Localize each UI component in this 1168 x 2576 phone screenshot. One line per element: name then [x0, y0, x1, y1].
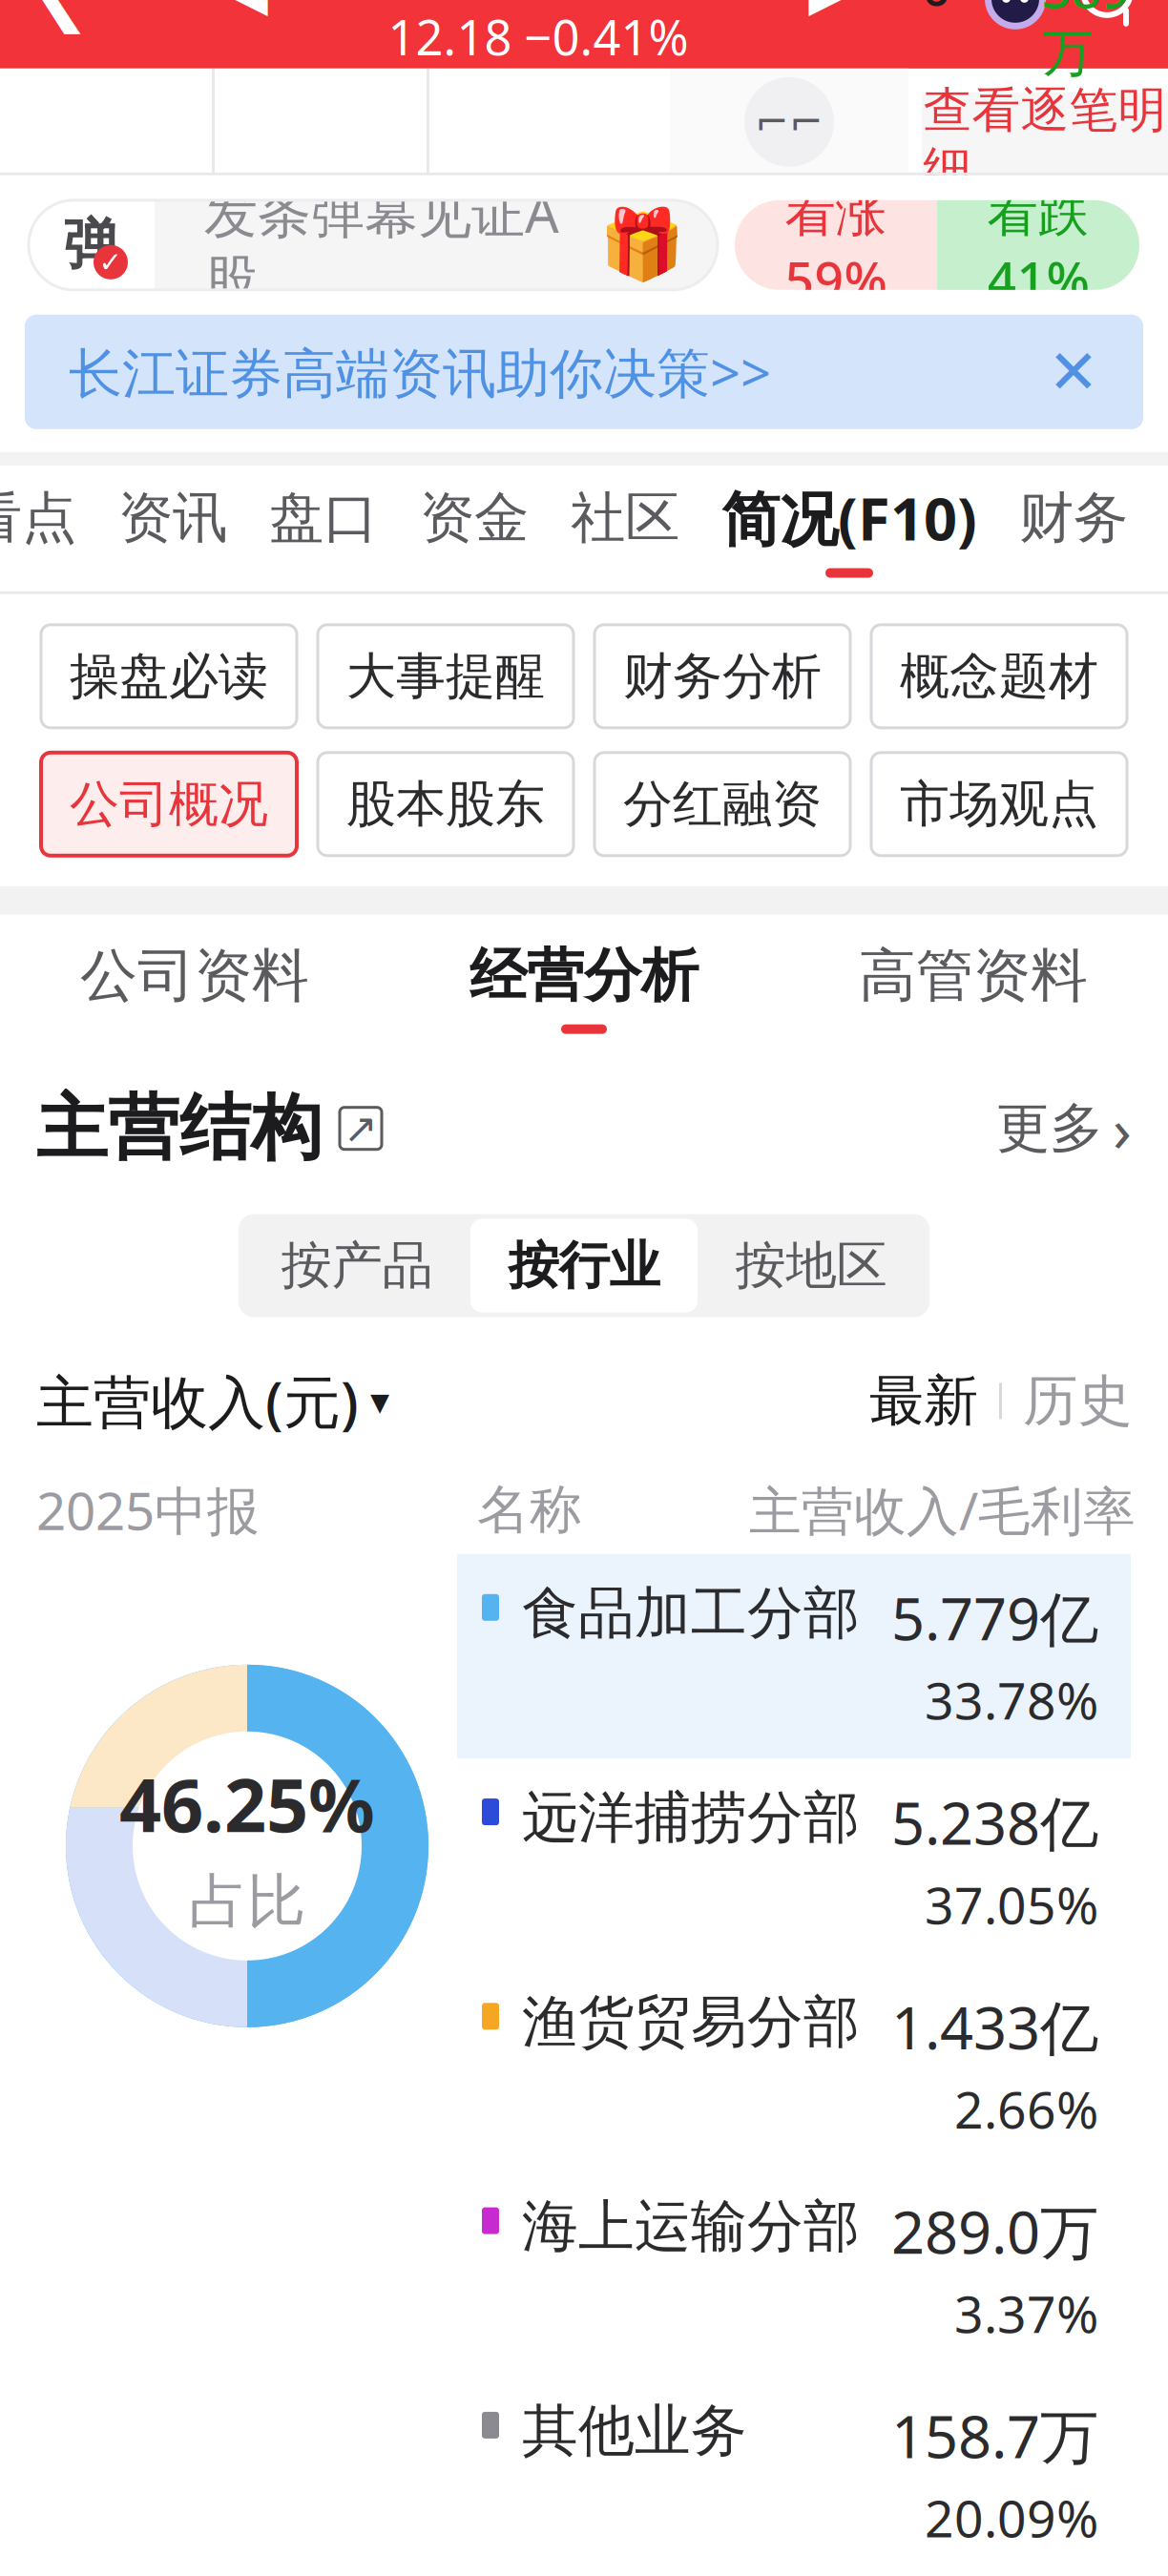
- button[interactable]: Search: [1061, 0, 1153, 44]
- button[interactable]: 公司概况: [41, 753, 297, 856]
- staticText: 2025中报: [36, 1475, 260, 1544]
- button[interactable]: 看跌 41%: [937, 200, 1139, 290]
- button[interactable]: Open in new page: [323, 1107, 382, 1149]
- button[interactable]: 按产品: [243, 1219, 470, 1312]
- button[interactable]: 概念题材: [871, 625, 1127, 728]
- staticText: 操盘必读: [70, 646, 268, 707]
- staticText: ▶: [808, 0, 849, 22]
- staticText: 1.433亿: [891, 1988, 1098, 2065]
- staticText: ↗: [344, 1105, 378, 1151]
- button[interactable]: 分红融资: [594, 753, 850, 856]
- staticText: 289.0万: [891, 2192, 1098, 2270]
- button[interactable]: 远洋捕捞分部: [457, 1758, 1131, 1963]
- staticText: 看涨 59%: [785, 177, 887, 313]
- button[interactable]: 渔货贸易分部: [457, 1963, 1131, 2167]
- button[interactable]: 社区: [550, 465, 700, 591]
- button[interactable]: 财务分析: [594, 625, 850, 728]
- staticText: 37.05%: [925, 1870, 1098, 1938]
- button[interactable]: 食品加工分部: [457, 1554, 1131, 1758]
- button[interactable]: 资讯: [97, 465, 248, 591]
- staticText: 财务: [1019, 484, 1128, 551]
- button[interactable]: 经营分析: [389, 915, 779, 1060]
- staticText: 其他业务: [522, 2397, 747, 2465]
- staticText: 分红融资: [623, 774, 822, 835]
- staticText: 主营结构: [36, 1085, 323, 1172]
- staticText: ›: [1113, 1088, 1132, 1169]
- button[interactable]: AI assistant: [970, 0, 1061, 44]
- staticText: 占比: [189, 1866, 305, 1938]
- button[interactable]: 简况(F10): [700, 465, 998, 591]
- staticText: 海上运输分部: [522, 2192, 860, 2261]
- staticText: ✓: [99, 246, 123, 278]
- button[interactable]: 长江证券高端资讯助你决策>>: [25, 315, 1143, 429]
- staticText: 渔货贸易分部: [522, 1988, 860, 2057]
- button[interactable]: 股本股东: [318, 753, 574, 856]
- staticText: 按产品: [281, 1234, 433, 1297]
- staticText: 按地区: [735, 1234, 887, 1297]
- button[interactable]: 大事提醒: [318, 625, 574, 728]
- staticText: 财务分析: [623, 646, 822, 707]
- button[interactable]: 市场观点: [871, 753, 1127, 856]
- button[interactable]: 资金: [399, 465, 550, 591]
- staticText: 20.09%: [925, 2484, 1098, 2551]
- button[interactable]: 高管资料: [779, 915, 1168, 1060]
- staticText: 最新: [869, 1367, 978, 1435]
- button[interactable]: Previous stock: [210, 0, 285, 44]
- button[interactable]: 查看逐笔明细: [922, 92, 1168, 188]
- button[interactable]: 公司资料: [0, 915, 389, 1060]
- staticText: 长江证券高端资讯助你决策>>: [69, 336, 771, 407]
- button[interactable]: 按地区: [698, 1219, 925, 1312]
- staticText: 5.238亿: [891, 1783, 1098, 1861]
- staticText: 社区: [571, 484, 679, 551]
- staticText: 158.7万: [891, 2397, 1098, 2474]
- button[interactable]: 海上运输分部: [457, 2167, 1131, 2372]
- button[interactable]: 操盘必读: [41, 625, 297, 728]
- staticText: 名称: [477, 1478, 582, 1542]
- staticText: 弹: [63, 211, 120, 279]
- staticText: 看点: [0, 484, 76, 551]
- staticText: 大事提醒: [346, 646, 545, 707]
- button[interactable]: 按行业: [470, 1219, 698, 1312]
- staticText: ⌐⌐: [755, 99, 824, 145]
- staticText: 12.18 −0.41%: [388, 5, 688, 69]
- staticText: 概念题材: [900, 646, 1098, 707]
- staticText: ❮: [30, 0, 92, 33]
- button[interactable]: 财务: [998, 465, 1149, 591]
- button[interactable]: 其他业务: [457, 2372, 1131, 2576]
- staticText: 查看逐笔明细: [923, 81, 1167, 199]
- button[interactable]: 更多: [996, 1088, 1132, 1169]
- button[interactable]: Back: [15, 0, 107, 44]
- staticText: 主营收入/毛利率: [749, 1475, 1136, 1544]
- staticText: 2.66%: [954, 2075, 1098, 2142]
- staticText: 股本股东: [346, 774, 545, 835]
- button[interactable]: 看点: [0, 465, 97, 591]
- staticText: 15:00: [922, 0, 1025, 20]
- staticText: 🎁: [599, 206, 685, 284]
- button[interactable]: 历史: [1023, 1367, 1132, 1435]
- button[interactable]: 盘口: [248, 465, 399, 591]
- staticText: 资金: [420, 484, 529, 551]
- staticText: ◀: [227, 0, 268, 22]
- staticText: 主营收入(元): [36, 1363, 359, 1439]
- staticText: 3.37%: [954, 2279, 1098, 2347]
- staticText: 公司资料: [80, 941, 309, 1011]
- staticText: 更多: [996, 1096, 1103, 1161]
- staticText: ▾: [370, 1379, 389, 1423]
- staticText: 5.779亿: [891, 1579, 1098, 1656]
- button[interactable]: 主营收入(元): [36, 1363, 389, 1439]
- staticText: 资讯: [118, 484, 227, 551]
- staticText: 看跌 41%: [987, 177, 1089, 313]
- button[interactable]: 看涨 59%: [735, 200, 937, 290]
- staticText: 33.78%: [925, 1666, 1098, 1734]
- button[interactable]: 最新: [869, 1367, 978, 1435]
- staticText: 发条弹幕见证A股: [204, 177, 559, 313]
- staticText: ✕: [1048, 337, 1099, 407]
- button[interactable]: 弹: [29, 200, 718, 290]
- staticText: 简况(F10): [721, 479, 977, 557]
- staticText: 远洋捕捞分部: [522, 1783, 860, 1852]
- staticText: 盘口: [269, 484, 378, 551]
- button[interactable]: Next stock: [792, 0, 866, 44]
- staticText: 市场观点: [900, 774, 1098, 835]
- staticText: 12.18 389万: [1042, 0, 1145, 85]
- staticText: 按行业: [508, 1234, 660, 1297]
